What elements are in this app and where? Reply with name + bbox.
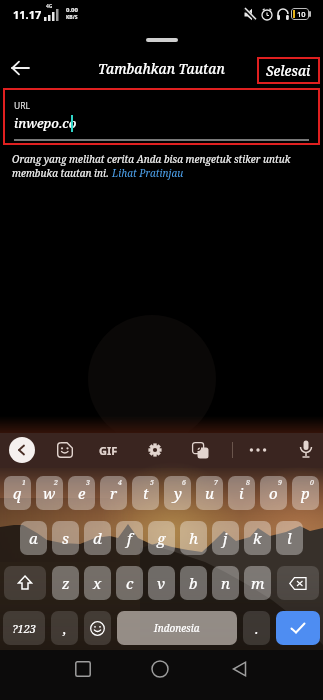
button[interactable]: v — [148, 566, 175, 600]
staticText: 11.17 — [13, 7, 42, 22]
button[interactable]: b — [180, 566, 207, 600]
button[interactable]: g — [148, 521, 175, 555]
staticText: KB/S — [66, 14, 78, 21]
button[interactable] — [4, 566, 46, 600]
staticText: a — [29, 528, 38, 548]
button[interactable]: d — [84, 521, 111, 555]
staticText: r — [110, 483, 118, 503]
staticText: 5 — [150, 478, 154, 488]
staticText: 0 — [310, 478, 314, 488]
button[interactable] — [57, 442, 73, 458]
staticText: u — [205, 483, 214, 503]
staticText: . — [255, 619, 259, 638]
staticText: , — [63, 619, 67, 638]
button[interactable]: n — [212, 566, 239, 600]
button[interactable]: o — [260, 476, 287, 510]
staticText: 7 — [214, 478, 218, 488]
button[interactable]: Indonesia — [117, 611, 237, 645]
button[interactable]: p — [292, 476, 319, 510]
staticText: 10 — [297, 9, 306, 19]
button[interactable] — [232, 661, 247, 677]
button[interactable]: m — [244, 566, 271, 600]
button[interactable] — [277, 566, 319, 600]
staticText: e — [78, 483, 86, 503]
staticText: h — [189, 528, 198, 548]
button[interactable]: URL — [3, 88, 320, 145]
button[interactable]: j — [212, 521, 239, 555]
staticText: membuka tautan ini. — [12, 166, 112, 180]
staticText: n — [221, 573, 230, 593]
button[interactable] — [75, 661, 91, 677]
button[interactable]: f — [116, 521, 143, 555]
button[interactable]: s — [52, 521, 79, 555]
button[interactable] — [249, 448, 267, 452]
staticText: 0.00 — [66, 6, 78, 14]
staticText: q — [13, 483, 22, 503]
staticText: p — [301, 483, 310, 503]
staticText: l — [287, 528, 292, 548]
staticText: m — [251, 573, 265, 593]
staticText: 9 — [278, 478, 282, 488]
button[interactable]: r — [100, 476, 127, 510]
staticText: b — [189, 573, 198, 593]
staticText: j — [223, 528, 228, 548]
staticText: Tambahkan Tautan — [98, 60, 225, 78]
staticText: c — [126, 573, 134, 593]
button[interactable] — [9, 437, 35, 463]
button[interactable]: i — [228, 476, 255, 510]
staticText: 8 — [246, 478, 250, 488]
staticText: f — [127, 528, 132, 548]
button[interactable] — [151, 660, 169, 678]
staticText: y — [174, 483, 182, 503]
button[interactable]: y — [164, 476, 191, 510]
staticText: s — [62, 528, 69, 548]
button[interactable]: u — [196, 476, 223, 510]
staticText: 3 — [86, 478, 90, 488]
staticText: 2 — [54, 478, 58, 488]
staticText: o — [269, 483, 278, 503]
button[interactable]: h — [180, 521, 207, 555]
staticText: URL — [14, 100, 30, 112]
button[interactable]: e — [68, 476, 95, 510]
button[interactable]: l — [276, 521, 303, 555]
staticText: g — [157, 528, 166, 548]
button[interactable] — [84, 611, 111, 645]
staticText: k — [253, 528, 262, 548]
staticText: inwepo.co — [14, 114, 77, 132]
button[interactable]: Selesai — [257, 57, 320, 84]
button[interactable]: c — [116, 566, 143, 600]
button[interactable]: ?123 — [3, 611, 45, 645]
staticText: 4 — [118, 478, 122, 488]
staticText: w — [43, 483, 56, 503]
button[interactable] — [192, 442, 209, 459]
staticText: d — [93, 528, 102, 548]
button[interactable] — [12, 61, 30, 75]
staticText: x — [93, 573, 102, 593]
button[interactable]: q — [4, 476, 31, 510]
button[interactable] — [276, 611, 320, 645]
staticText: 6 — [182, 478, 186, 488]
button[interactable] — [147, 442, 163, 458]
staticText: ?123 — [12, 621, 36, 636]
staticText: 4G — [46, 3, 53, 10]
button[interactable]: t — [132, 476, 159, 510]
button[interactable]: , — [51, 611, 78, 645]
button[interactable] — [299, 440, 313, 459]
staticText: Selesai — [266, 62, 311, 80]
button[interactable]: Lihat Pratinjau — [112, 166, 184, 180]
button[interactable]: . — [243, 611, 270, 645]
button[interactable]: a — [20, 521, 47, 555]
staticText: Orang yang melihat cerita Anda bisa meng… — [12, 152, 291, 166]
staticText: v — [157, 573, 166, 593]
button[interactable]: x — [84, 566, 111, 600]
button[interactable]: w — [36, 476, 63, 510]
button[interactable]: z — [52, 566, 79, 600]
staticText: z — [62, 573, 70, 593]
button[interactable]: k — [244, 521, 271, 555]
staticText: t — [143, 483, 149, 503]
staticText: 1 — [22, 478, 26, 488]
button[interactable]: GIF — [99, 443, 118, 458]
staticText: Indonesia — [154, 621, 200, 635]
staticText: i — [239, 483, 244, 503]
